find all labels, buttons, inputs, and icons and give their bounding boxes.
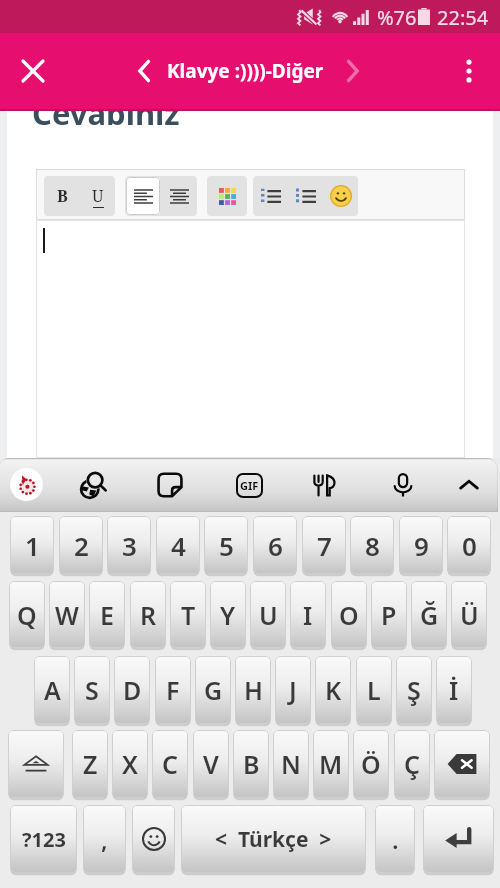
staticText: Ş: [407, 673, 421, 707]
staticText: 0: [462, 528, 477, 563]
staticText: 22:54: [437, 4, 489, 31]
button[interactable]: R: [130, 581, 166, 648]
button[interactable]: K: [315, 656, 351, 724]
staticText: Ğ: [420, 598, 439, 632]
staticText: D: [123, 673, 142, 707]
button[interactable]: P: [371, 581, 407, 648]
button[interactable]: Expand keyboard: [450, 466, 488, 504]
staticText: %76: [377, 4, 417, 31]
button[interactable]: U: [80, 176, 115, 216]
staticText: Klavye :))))-Diğer: [167, 58, 324, 84]
staticText: 9: [414, 528, 429, 563]
button[interactable]: G: [195, 656, 231, 724]
button[interactable]: [253, 176, 288, 216]
button[interactable]: J: [275, 656, 311, 724]
button[interactable]: Q: [9, 581, 45, 648]
staticText: 4: [171, 528, 186, 563]
button[interactable]: Ü: [451, 581, 487, 648]
button[interactable]: Shift: [8, 730, 64, 798]
button[interactable]: Ö: [353, 730, 389, 798]
button[interactable]: X: [112, 730, 148, 798]
button[interactable]: Enter: [423, 805, 494, 873]
button[interactable]: ?123: [10, 805, 77, 873]
button[interactable]: H: [235, 656, 271, 724]
staticText: H: [244, 673, 263, 707]
button[interactable]: GIF: [230, 466, 268, 504]
staticText: ,: [101, 823, 108, 856]
staticText: Ç: [404, 747, 420, 781]
staticText: U: [92, 185, 104, 207]
button[interactable]: Previous question: [127, 54, 161, 88]
button[interactable]: [207, 176, 247, 216]
staticText: W: [55, 598, 79, 632]
button[interactable]: Food: [305, 466, 343, 504]
button[interactable]: 6: [253, 516, 297, 574]
button[interactable]: Close: [13, 51, 53, 91]
button[interactable]: T: [170, 581, 206, 648]
button[interactable]: M: [313, 730, 349, 798]
button[interactable]: C: [152, 730, 188, 798]
button[interactable]: W: [49, 581, 85, 648]
button[interactable]: Next question: [336, 54, 370, 88]
button[interactable]: I: [290, 581, 326, 648]
button[interactable]: Ş: [396, 656, 432, 724]
staticText: Ö: [361, 747, 381, 781]
button[interactable]: F: [155, 656, 191, 724]
staticText: O: [339, 598, 359, 632]
button[interactable]: 7: [302, 516, 346, 574]
staticText: A: [44, 673, 61, 707]
button[interactable]: B: [233, 730, 269, 798]
staticText: 8: [365, 528, 380, 563]
button[interactable]: 2: [59, 516, 103, 574]
staticText: Cevabınız: [32, 92, 180, 134]
button[interactable]: Keyboard settings: [10, 468, 43, 501]
button[interactable]: Emoji: [132, 805, 175, 873]
button[interactable]: İ: [436, 656, 472, 724]
button[interactable]: B: [44, 176, 80, 216]
button[interactable]: V: [193, 730, 229, 798]
button[interactable]: [288, 176, 323, 216]
button[interactable]: Stickers: [151, 466, 189, 504]
button[interactable]: S: [74, 656, 110, 724]
button[interactable]: [161, 176, 197, 216]
staticText: B: [57, 185, 68, 207]
staticText: 5: [219, 528, 234, 563]
staticText: İ: [449, 673, 459, 707]
button[interactable]: E: [89, 581, 125, 648]
button[interactable]: 9: [399, 516, 443, 574]
button[interactable]: Search: [74, 466, 112, 504]
button[interactable]: 0: [447, 516, 491, 574]
button[interactable]: 5: [204, 516, 248, 574]
button[interactable]: 4: [156, 516, 200, 574]
staticText: V: [203, 747, 219, 781]
button[interactable]: 8: [350, 516, 394, 574]
button[interactable]: .: [375, 805, 415, 873]
staticText: F: [166, 673, 180, 707]
button[interactable]: < Türkçe >: [181, 805, 366, 873]
button[interactable]: ,: [83, 805, 126, 873]
staticText: 7: [317, 528, 332, 563]
button[interactable]: Ç: [394, 730, 430, 798]
staticText: < Türkçe >: [215, 825, 332, 854]
staticText: Ü: [460, 598, 479, 632]
button[interactable]: More options: [449, 51, 489, 91]
button[interactable]: D: [114, 656, 150, 724]
button[interactable]: Ğ: [411, 581, 447, 648]
button[interactable]: 3: [107, 516, 151, 574]
button[interactable]: [323, 176, 358, 216]
button[interactable]: Y: [210, 581, 246, 648]
button[interactable]: [126, 177, 160, 215]
button[interactable]: Z: [72, 730, 108, 798]
button[interactable]: N: [273, 730, 309, 798]
staticText: C: [162, 747, 178, 781]
button[interactable]: U: [250, 581, 286, 648]
button[interactable]: 1: [10, 516, 54, 574]
button[interactable]: Backspace: [434, 730, 490, 798]
staticText: Z: [83, 747, 98, 781]
button[interactable]: Voice input: [384, 466, 422, 504]
staticText: 2: [74, 528, 89, 563]
button[interactable]: A: [34, 656, 70, 724]
button[interactable]: O: [331, 581, 367, 648]
staticText: I: [303, 598, 313, 632]
button[interactable]: L: [356, 656, 392, 724]
